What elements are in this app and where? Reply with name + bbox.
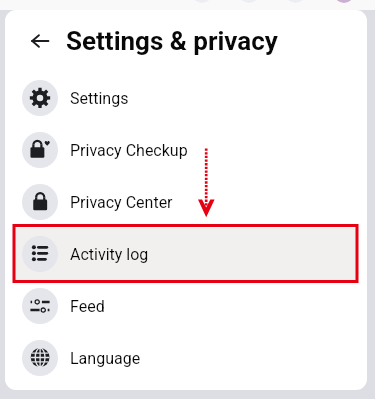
button[interactable]: Feed	[5, 280, 367, 332]
button[interactable]: Back	[24, 25, 56, 57]
button[interactable]: Privacy Checkup	[5, 124, 367, 176]
staticText: Language	[70, 349, 141, 368]
button[interactable]: Activity log	[5, 228, 367, 280]
button[interactable]: Settings	[5, 72, 367, 124]
button[interactable]: Language	[5, 332, 367, 384]
staticText: Privacy Center	[70, 193, 173, 212]
staticText: Privacy Checkup	[70, 141, 188, 160]
staticText: Settings	[70, 89, 129, 108]
staticText: Feed	[70, 297, 105, 316]
staticText: Activity log	[70, 245, 149, 264]
button[interactable]: Privacy Center	[5, 176, 367, 228]
staticText: Settings & privacy	[66, 26, 278, 56]
